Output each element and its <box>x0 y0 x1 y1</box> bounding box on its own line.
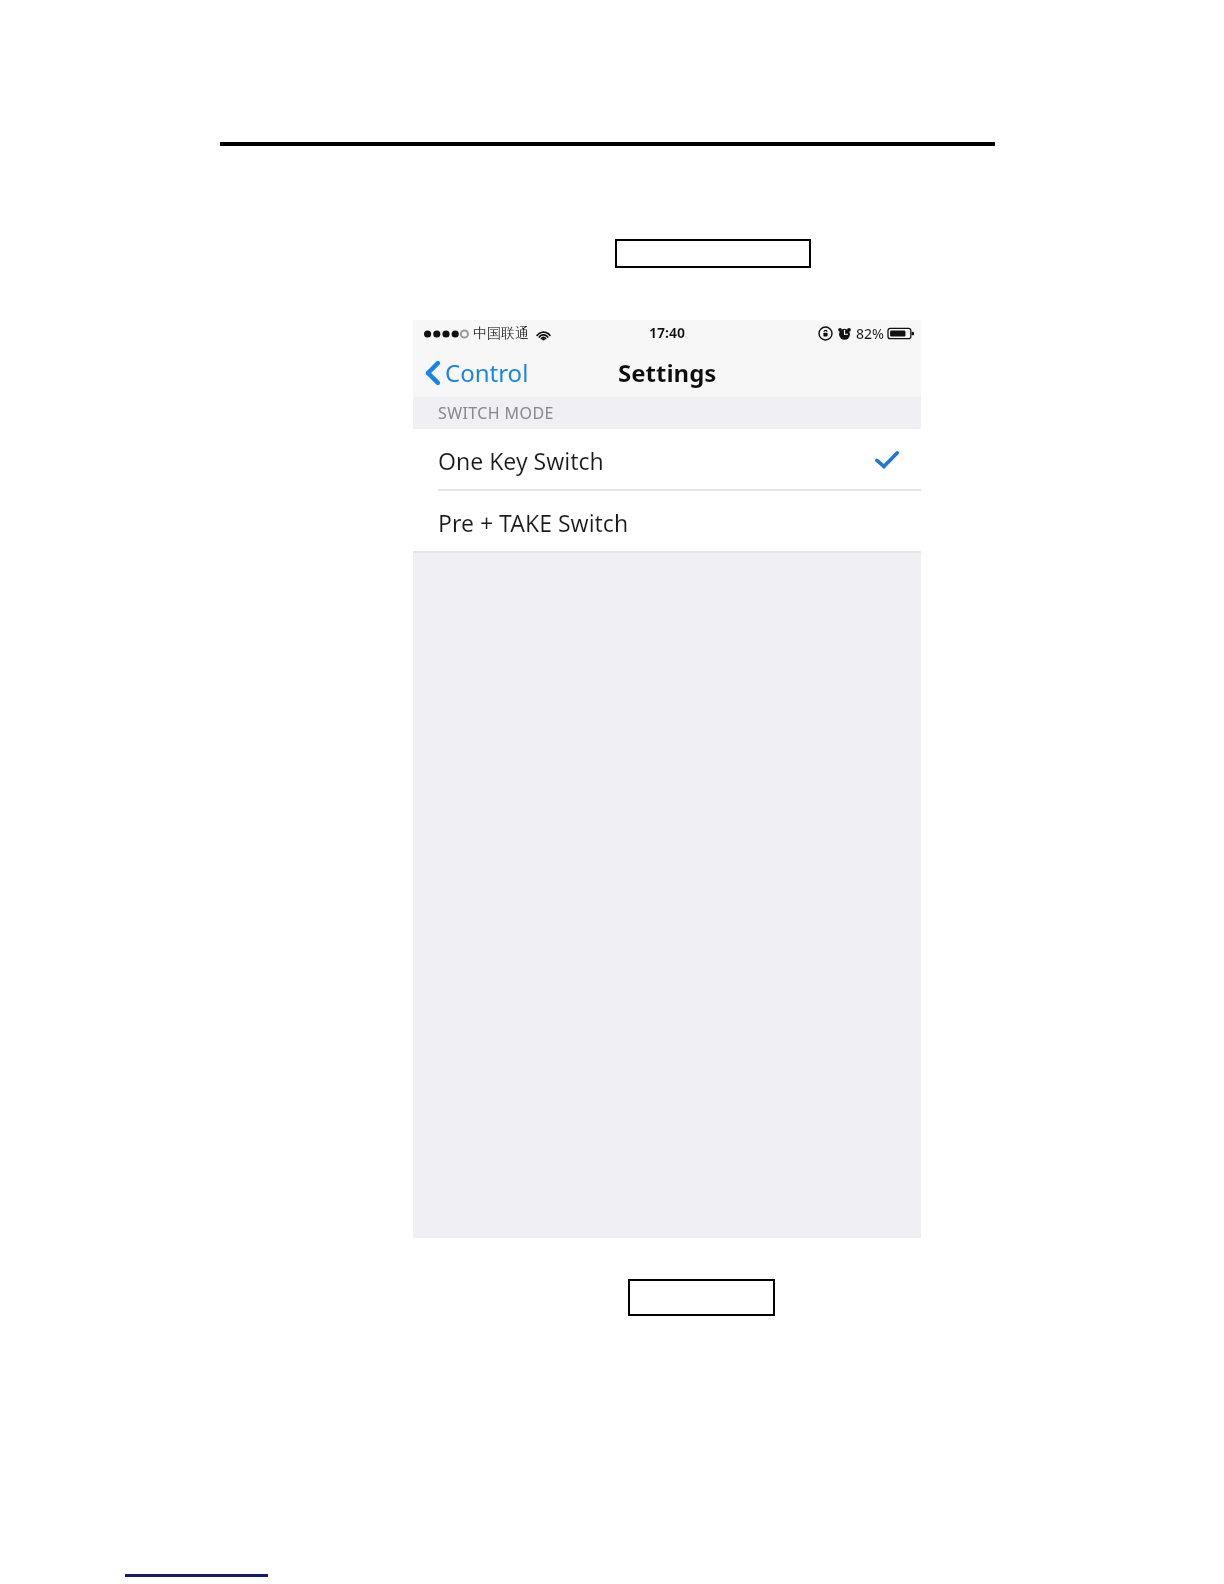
other: Selected <box>876 451 898 469</box>
button[interactable]: Pre + TAKE Switch <box>413 491 921 553</box>
staticText: Settings <box>618 356 717 389</box>
staticText: 82% <box>856 324 884 343</box>
button[interactable]: One Key Switch <box>413 429 921 491</box>
button[interactable]: Control <box>413 350 543 395</box>
staticText: 17:40 <box>649 323 685 342</box>
staticText: Control <box>445 356 529 389</box>
staticText: SWITCH MODE <box>438 402 554 424</box>
staticText: 中国联通 <box>473 325 529 343</box>
staticText: One Key Switch <box>438 445 604 476</box>
staticText: Pre + TAKE Switch <box>438 507 629 538</box>
